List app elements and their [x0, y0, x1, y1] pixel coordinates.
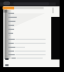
button[interactable]: [1, 1, 6, 5]
button[interactable]: [7, 1, 31, 5]
button[interactable]: [0, 67, 39, 72]
